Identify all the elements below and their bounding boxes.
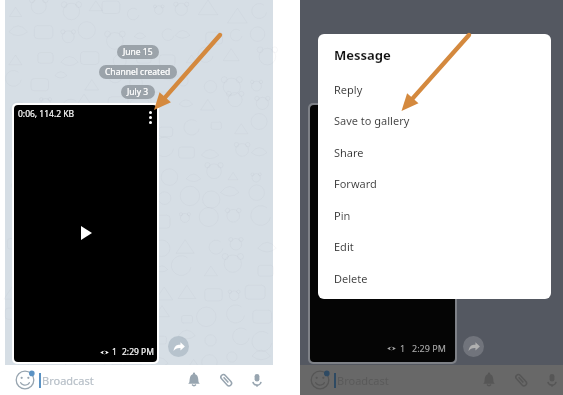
staticText: Pin — [334, 208, 351, 223]
button[interactable]: Record voice message — [544, 372, 560, 388]
staticText: July 3 — [127, 86, 149, 98]
button[interactable]: Pin — [318, 200, 551, 231]
button[interactable]: Reply — [318, 74, 551, 105]
staticText: 1 — [400, 342, 406, 354]
button[interactable]: More options — [149, 111, 152, 124]
button[interactable]: Notifications — [481, 372, 497, 388]
button[interactable]: Attach file — [513, 372, 529, 388]
button[interactable]: Delete — [318, 263, 551, 294]
staticText: June 15 — [123, 46, 153, 58]
button[interactable]: Save to gallery — [318, 105, 551, 136]
staticText: 2:29 PM — [412, 342, 446, 354]
button[interactable]: Record voice message — [249, 372, 265, 388]
staticText: Broadcast — [337, 373, 389, 388]
staticText: Edit — [334, 239, 354, 254]
staticText: 0:06, 114.2 KB — [18, 108, 75, 120]
staticText: Broadcast — [42, 373, 94, 388]
staticText: Channel created — [105, 66, 171, 78]
staticText: Message — [334, 46, 391, 64]
button[interactable]: Channel created — [105, 66, 171, 78]
button[interactable]: Attach file — [218, 372, 234, 388]
staticText: 1 — [112, 346, 117, 358]
button[interactable]: 0:06, 114.2 KB — [14, 105, 157, 362]
button[interactable]: Emoji — [310, 370, 330, 390]
button[interactable]: July 3 — [127, 86, 149, 98]
staticText: Save to gallery — [334, 113, 410, 128]
staticText: Forward — [334, 176, 377, 191]
button[interactable]: June 15 — [123, 46, 153, 58]
staticText: Share — [334, 145, 364, 160]
staticText: Delete — [334, 271, 368, 286]
button[interactable]: Edit — [318, 231, 551, 262]
button[interactable]: Forward — [168, 336, 189, 357]
button[interactable]: Share — [318, 137, 551, 168]
button[interactable]: Forward — [318, 168, 551, 199]
staticText: Reply — [334, 82, 363, 97]
button[interactable]: Emoji — [15, 370, 35, 390]
button[interactable]: Notifications — [186, 372, 202, 388]
staticText: 2:29 PM — [122, 346, 154, 358]
